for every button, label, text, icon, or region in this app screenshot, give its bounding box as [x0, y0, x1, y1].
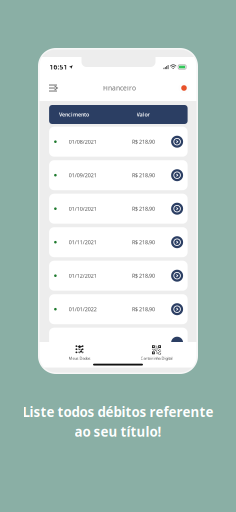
- button[interactable]: Carteirinha Digital: [126, 345, 186, 361]
- staticText: Liste todos débitos referente: [22, 403, 213, 421]
- staticText: Carteirinha Digital: [140, 355, 172, 361]
- staticText: R$ 218,90: [132, 306, 155, 313]
- button[interactable]: Perfil: [178, 82, 189, 93]
- staticText: R$ 218,90: [132, 272, 155, 279]
- button[interactable]: 01/10/2021: [49, 194, 188, 224]
- button[interactable]: 01/11/2021: [49, 227, 188, 257]
- button[interactable]: 01/09/2021: [49, 160, 188, 190]
- staticText: Valor: [137, 111, 150, 118]
- staticText: Financeiro: [103, 84, 136, 92]
- staticText: Meus Dados: [68, 355, 90, 361]
- staticText: 16:51: [49, 63, 67, 71]
- staticText: 01/09/2021: [69, 172, 97, 179]
- staticText: R$ 218,90: [132, 172, 155, 179]
- button[interactable]: 01/01/2022: [49, 294, 188, 324]
- button[interactable]: Menu: [46, 81, 60, 94]
- staticText: R$ 218,90: [132, 205, 155, 212]
- staticText: Vencimento: [59, 111, 89, 118]
- staticText: 01/01/2022: [69, 306, 97, 313]
- button[interactable]: Meus Dados: [49, 345, 109, 361]
- staticText: 01/10/2021: [69, 205, 97, 212]
- button[interactable]: 01/08/2021: [49, 127, 188, 157]
- staticText: R$ 218,90: [132, 138, 155, 145]
- staticText: R$ 218,90: [132, 239, 155, 246]
- staticText: ao seu título!: [74, 423, 161, 440]
- button[interactable]: 01/12/2021: [49, 261, 188, 291]
- staticText: 01/11/2021: [69, 239, 97, 246]
- staticText: 01/12/2021: [69, 272, 97, 279]
- staticText: 01/08/2021: [69, 138, 97, 145]
